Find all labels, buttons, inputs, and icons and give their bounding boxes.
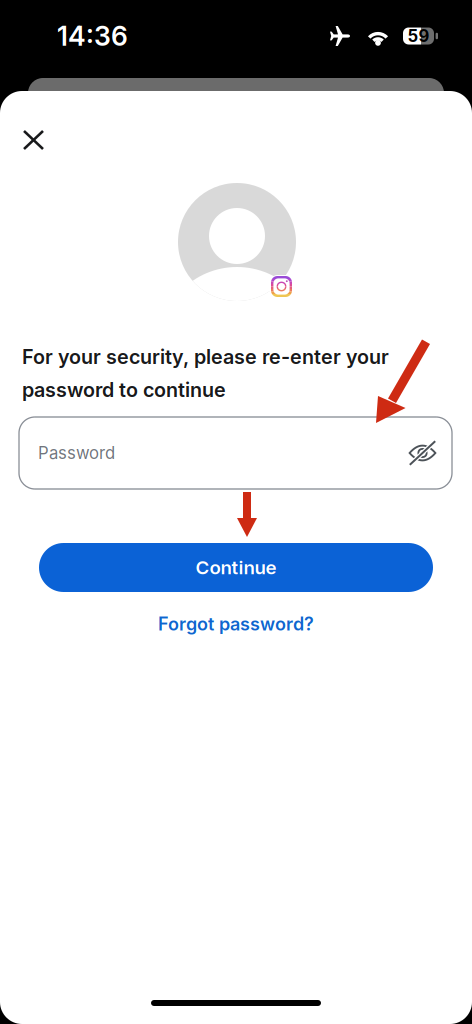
staticText: Forgot password? <box>158 613 314 635</box>
staticText: For your security, please re-enter your … <box>22 345 389 402</box>
button[interactable]: Forgot password? <box>146 605 326 643</box>
staticText: Password <box>38 443 115 463</box>
staticText: 14:36 <box>57 20 128 52</box>
button[interactable]: Continue <box>39 543 433 592</box>
button[interactable]: Password <box>19 417 452 489</box>
staticText: 59 <box>407 26 429 46</box>
button[interactable]: Close <box>10 117 57 163</box>
staticText: Continue <box>195 556 276 579</box>
